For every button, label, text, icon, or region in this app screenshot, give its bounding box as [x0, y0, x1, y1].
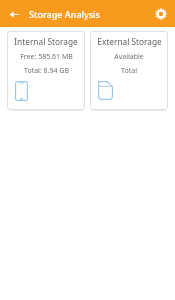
- button[interactable]: Internal Storage: [7, 31, 85, 110]
- staticText: Total: [121, 66, 137, 76]
- button[interactable]: External Storage: [90, 31, 168, 110]
- button[interactable]: Settings: [151, 4, 171, 24]
- staticText: Available: [114, 52, 144, 62]
- staticText: External Storage: [97, 36, 162, 47]
- staticText: Free: 585.61 MB: [20, 52, 73, 62]
- staticText: Storage Analysis: [29, 8, 100, 20]
- staticText: Internal Storage: [14, 36, 78, 47]
- staticText: Total: 8.94 GB: [24, 66, 69, 76]
- button[interactable]: Back: [4, 4, 24, 24]
